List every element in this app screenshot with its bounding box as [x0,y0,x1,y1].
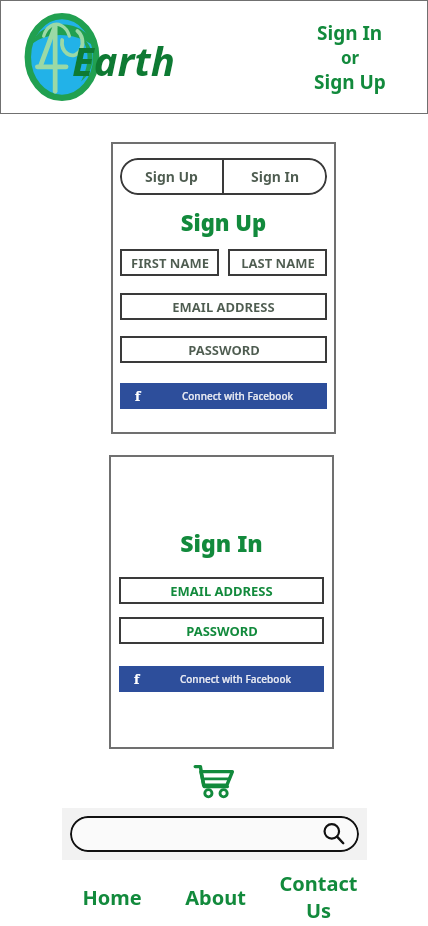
button[interactable]: Sign Up [120,158,222,195]
staticText: Sign In [317,20,383,46]
staticText: Contact Us [267,870,370,924]
staticText: f [135,387,141,405]
button[interactable]: EMAIL ADDRESS [119,577,324,604]
button[interactable]: Sign In [224,158,327,195]
staticText: Sign Up [314,69,386,95]
staticText: Sign Up [145,167,198,186]
button[interactable]: Sign In [314,20,386,95]
staticText: Earth [72,33,175,87]
staticText: LAST NAME [241,254,315,272]
staticText: EMAIL ADDRESS [170,582,273,600]
button[interactable]: About [164,884,267,911]
button[interactable]: Home [60,884,164,911]
staticText: PASSWORD [186,622,258,640]
staticText: f [134,670,140,688]
button[interactable]: EMAIL ADDRESS [120,293,327,320]
staticText: Sign Up [111,207,336,237]
staticText: or [341,46,360,69]
button[interactable]: f [120,383,327,409]
staticText: Home [82,884,142,911]
button[interactable]: FIRST NAME [120,249,219,276]
button[interactable]: PASSWORD [119,617,324,644]
button[interactable]: Contact Us [267,870,370,924]
staticText: Sign In [251,167,300,186]
staticText: FIRST NAME [131,254,209,272]
button[interactable]: Shopping cart [192,761,236,801]
button[interactable]: LAST NAME [228,249,327,276]
button[interactable]: PASSWORD [120,336,327,363]
staticText: EMAIL ADDRESS [172,298,275,316]
staticText: Connect with Facebook [147,672,324,686]
button[interactable]: Search [70,816,359,852]
button[interactable]: f [119,666,324,692]
staticText: Sign In [109,527,334,558]
staticText: PASSWORD [188,341,260,359]
staticText: Connect with Facebook [148,389,327,403]
staticText: About [185,884,246,911]
